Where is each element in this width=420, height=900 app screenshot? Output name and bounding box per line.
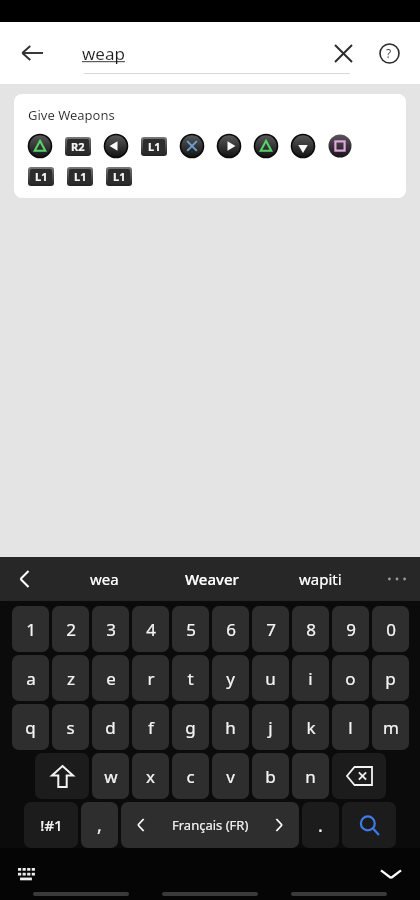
button[interactable]: wea <box>50 557 158 601</box>
button[interactable]: b <box>252 753 289 799</box>
button[interactable]: . <box>302 802 339 848</box>
button[interactable]: Backspace <box>332 753 386 799</box>
button[interactable]: Button R2 <box>65 137 91 156</box>
staticText: Weaver <box>185 569 239 589</box>
button[interactable]: s <box>52 704 89 750</box>
button[interactable]: n <box>292 753 329 799</box>
button[interactable]: Button L1 <box>67 167 93 186</box>
button[interactable]: Weaver <box>158 557 266 601</box>
button[interactable]: !#1 <box>24 802 78 848</box>
button[interactable]: Help <box>366 30 412 76</box>
staticText: e <box>106 667 116 690</box>
button[interactable]: 9 <box>332 606 369 652</box>
button[interactable]: Button cross <box>180 134 204 158</box>
button[interactable]: Previous <box>0 557 50 601</box>
button[interactable]: g <box>172 704 209 750</box>
staticText: L1 <box>74 169 87 184</box>
button[interactable]: wapiti <box>266 557 374 601</box>
staticText: Give Weapons <box>28 106 115 124</box>
staticText: v <box>226 765 235 788</box>
staticText: w <box>104 765 118 788</box>
staticText: l <box>348 716 353 739</box>
button[interactable]: r <box>132 655 169 701</box>
staticText: f <box>148 716 154 739</box>
button[interactable]: f <box>132 704 169 750</box>
button[interactable]: h <box>212 704 249 750</box>
staticText: L1 <box>148 139 161 154</box>
button[interactable]: Button square <box>328 134 352 158</box>
button[interactable]: Button L1 <box>28 167 54 186</box>
button[interactable]: Back <box>8 29 56 77</box>
button[interactable]: w <box>92 753 129 799</box>
button[interactable]: Button down <box>291 134 315 158</box>
staticText: 2 <box>66 618 76 641</box>
staticText: 4 <box>146 618 156 641</box>
button[interactable]: Button triangle <box>28 134 52 158</box>
button[interactable]: More suggestions <box>374 557 420 601</box>
button[interactable]: 5 <box>172 606 209 652</box>
other: Backspace <box>347 767 372 785</box>
staticText: n <box>305 765 316 788</box>
staticText: q <box>25 716 36 739</box>
button[interactable]: c <box>172 753 209 799</box>
button[interactable]: Français (FR) <box>121 802 299 848</box>
button[interactable]: m <box>372 704 409 750</box>
button[interactable]: a <box>12 655 49 701</box>
button[interactable]: i <box>292 655 329 701</box>
staticText: 8 <box>306 618 316 641</box>
button[interactable]: 6 <box>212 606 249 652</box>
staticText: Français (FR) <box>172 816 249 834</box>
button[interactable]: o <box>332 655 369 701</box>
button[interactable]: Button L1 <box>141 137 167 156</box>
staticText: o <box>345 667 356 690</box>
button[interactable]: 0 <box>372 606 409 652</box>
staticText: 0 <box>386 618 396 641</box>
button[interactable]: 7 <box>252 606 289 652</box>
staticText: a <box>26 667 36 690</box>
button[interactable]: x <box>132 753 169 799</box>
staticText: t <box>187 667 194 690</box>
button[interactable]: e <box>92 655 129 701</box>
staticText: weap <box>82 42 125 65</box>
staticText: g <box>185 716 196 739</box>
button[interactable]: q <box>12 704 49 750</box>
button[interactable]: Search <box>342 802 396 848</box>
button[interactable]: u <box>252 655 289 701</box>
staticText: s <box>66 716 75 739</box>
staticText: R2 <box>71 139 85 154</box>
button[interactable]: 2 <box>52 606 89 652</box>
button[interactable]: d <box>92 704 129 750</box>
staticText: L1 <box>113 169 126 184</box>
button[interactable]: Shift <box>35 753 89 799</box>
button[interactable]: Button right <box>217 134 241 158</box>
staticText: p <box>385 667 396 690</box>
button[interactable]: v <box>212 753 249 799</box>
staticText: 6 <box>226 618 236 641</box>
button[interactable]: l <box>332 704 369 750</box>
staticText: . <box>318 813 323 838</box>
button[interactable]: y <box>212 655 249 701</box>
button[interactable]: 8 <box>292 606 329 652</box>
staticText: ? <box>386 45 392 61</box>
button[interactable]: z <box>52 655 89 701</box>
staticText: u <box>265 667 276 690</box>
staticText: r <box>147 667 155 690</box>
button[interactable]: 3 <box>92 606 129 652</box>
button[interactable]: 1 <box>12 606 49 652</box>
button[interactable]: t <box>172 655 209 701</box>
staticText: j <box>268 716 273 739</box>
button[interactable]: 4 <box>132 606 169 652</box>
button[interactable]: j <box>252 704 289 750</box>
button[interactable]: Change keyboard <box>10 857 44 891</box>
button[interactable]: p <box>372 655 409 701</box>
staticText: y <box>226 667 235 690</box>
button[interactable]: Button triangle <box>254 134 278 158</box>
staticText: i <box>308 667 313 690</box>
button[interactable]: Give Weapons <box>14 94 406 198</box>
button[interactable]: k <box>292 704 329 750</box>
button[interactable]: Button left <box>104 134 128 158</box>
button[interactable]: Button L1 <box>106 167 132 186</box>
button[interactable]: Hide keyboard <box>374 857 408 891</box>
button[interactable]: , <box>81 802 118 848</box>
button[interactable]: Clear <box>320 30 366 76</box>
